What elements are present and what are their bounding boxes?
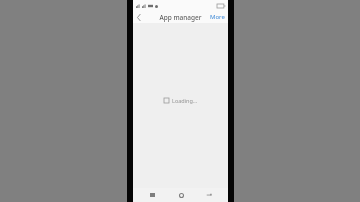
staticText: Loading... <box>172 97 198 104</box>
button[interactable]: Home <box>171 188 191 202</box>
button[interactable]: More <box>207 12 228 22</box>
staticText: App manager <box>159 13 202 22</box>
button[interactable]: Recents <box>142 188 162 202</box>
button[interactable]: Back <box>133 11 145 23</box>
button[interactable]: Back <box>199 188 219 202</box>
button[interactable]: Loading... <box>160 95 202 106</box>
staticText: More <box>210 13 225 21</box>
